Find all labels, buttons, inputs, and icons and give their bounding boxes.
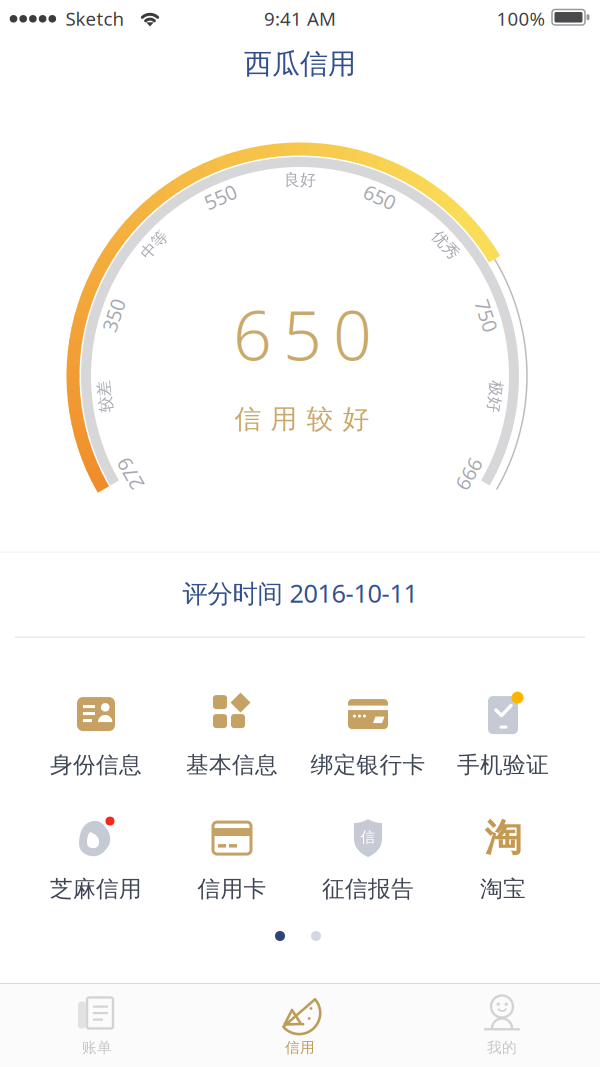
button[interactable]: 手机验证 xyxy=(436,687,570,783)
staticText: 750 xyxy=(470,302,503,329)
staticText: 信 xyxy=(360,828,375,846)
staticText: 良好 xyxy=(284,170,316,190)
button[interactable]: 绑定银行卡 xyxy=(301,687,435,783)
staticText: 征信报告 xyxy=(322,875,414,903)
staticText: 评分时间 2016-10-11 xyxy=(182,576,417,610)
staticText: 西瓜信用 xyxy=(244,47,356,81)
staticText: 650 xyxy=(233,289,372,379)
staticText: 身份信息 xyxy=(50,751,142,779)
staticText: 较差 xyxy=(89,387,121,406)
staticText: 淘宝 xyxy=(480,875,526,903)
staticText: 550 xyxy=(204,184,237,210)
staticText: 基本信息 xyxy=(186,751,278,779)
staticText: Sketch xyxy=(65,6,124,31)
staticText: 手机验证 xyxy=(457,751,549,779)
staticText: 信用卡 xyxy=(197,875,266,903)
staticText: 650 xyxy=(363,184,396,210)
button[interactable]: 芝麻信用 xyxy=(29,811,163,907)
staticText: 350 xyxy=(97,302,130,329)
staticText: 信用 xyxy=(285,1038,315,1056)
staticText: 芝麻信用 xyxy=(50,875,142,903)
button[interactable]: 信 xyxy=(301,811,435,907)
button[interactable]: 信用 xyxy=(215,983,385,1067)
staticText: 信用较好 xyxy=(234,403,369,435)
staticText: 优秀 xyxy=(430,235,462,255)
staticText: 极好 xyxy=(479,387,511,406)
staticText: 999 xyxy=(453,461,486,487)
button[interactable]: 淘 xyxy=(436,811,570,907)
staticText: 绑定银行卡 xyxy=(310,751,425,779)
button[interactable]: 信用卡 xyxy=(165,811,299,907)
staticText: 9:41 AM xyxy=(264,6,336,31)
staticText: 账单 xyxy=(82,1038,112,1056)
staticText: 我的 xyxy=(487,1038,517,1056)
button[interactable]: 基本信息 xyxy=(165,687,299,783)
button[interactable]: 账单 xyxy=(12,983,182,1067)
button[interactable]: 我的 xyxy=(417,983,587,1067)
button[interactable]: 身份信息 xyxy=(29,687,163,783)
staticText: 100% xyxy=(496,6,545,31)
staticText: 279 xyxy=(114,461,147,487)
staticText: 淘 xyxy=(484,815,521,861)
staticText: 中等 xyxy=(138,235,170,255)
